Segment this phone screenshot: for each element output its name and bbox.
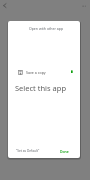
staticText: Save a copy <box>26 70 46 75</box>
button[interactable]: More options <box>80 1 90 11</box>
button[interactable]: Save a copy <box>8 66 80 78</box>
staticText: Select this app <box>15 83 67 93</box>
button[interactable]: "Set as Default" <box>16 149 40 153</box>
button[interactable]: Back <box>0 0 10 10</box>
button[interactable]: Done <box>60 149 69 154</box>
staticText: Open with other app <box>10 26 80 31</box>
